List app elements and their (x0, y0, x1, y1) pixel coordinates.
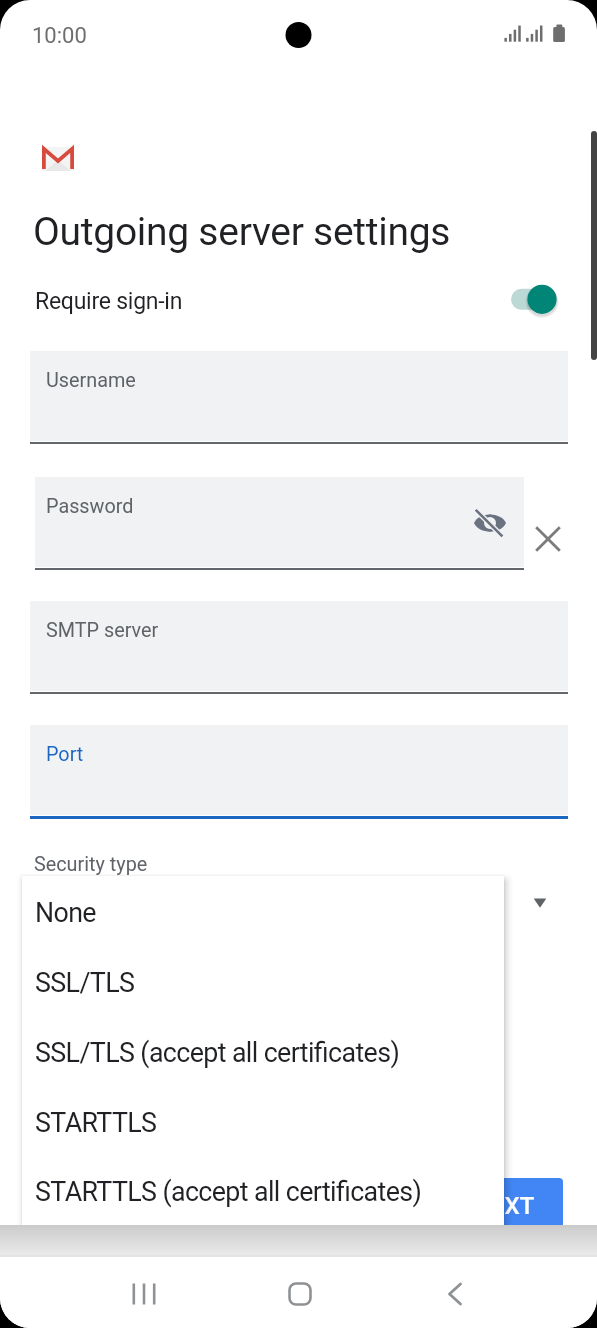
staticText: NEXT (474, 1192, 535, 1220)
staticText: Port (46, 743, 84, 766)
button[interactable]: STARTTLS (22, 1086, 504, 1156)
button[interactable]: SMTP server (30, 601, 568, 691)
staticText: SMTP server (46, 619, 159, 642)
button[interactable]: Recent apps (114, 1264, 174, 1324)
staticText: Username (46, 369, 136, 392)
staticText: Security type (34, 853, 148, 876)
staticText: 10:00 (32, 23, 87, 49)
button[interactable]: SSL/TLS (accept all certificates) (22, 1016, 504, 1086)
staticText: Password (46, 495, 134, 518)
button[interactable]: None (22, 876, 504, 946)
staticText: Outgoing server settings (33, 209, 451, 255)
button[interactable]: Back (425, 1264, 485, 1324)
button[interactable]: Require sign-in (0, 273, 597, 329)
button[interactable]: STARTTLS (accept all certificates) (22, 1156, 504, 1225)
staticText: SSL/TLS (accept all certificates) (35, 1037, 400, 1068)
staticText: STARTTLS (accept all certificates) (35, 1176, 422, 1207)
button[interactable]: Username (30, 351, 568, 441)
button[interactable]: Port (30, 725, 568, 815)
staticText: SSL/TLS (35, 967, 135, 998)
button[interactable]: Home (270, 1264, 330, 1324)
button[interactable]: Show password (474, 507, 506, 539)
staticText: None (35, 897, 96, 928)
button[interactable]: Clear password (532, 523, 564, 555)
staticText: STARTTLS (35, 1107, 157, 1138)
staticText: Require sign-in (35, 288, 183, 315)
button[interactable]: Open security type menu (524, 887, 556, 919)
button[interactable]: SSL/TLS (22, 946, 504, 1016)
button[interactable]: Password (35, 477, 524, 567)
button[interactable]: NEXT (445, 1178, 563, 1231)
